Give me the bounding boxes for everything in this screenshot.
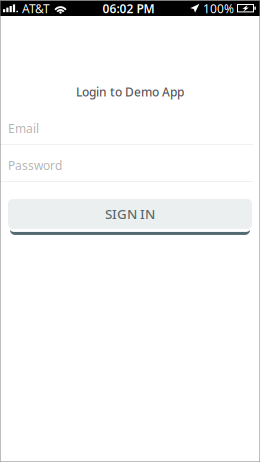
staticText: Login to Demo App xyxy=(76,84,184,100)
staticText: 100% xyxy=(203,0,234,16)
staticText: Email xyxy=(8,120,39,136)
staticText: AT&T xyxy=(22,0,50,16)
staticText: 06:02 PM xyxy=(102,0,154,16)
staticText: SIGN IN xyxy=(105,205,155,223)
staticText: Password xyxy=(8,157,62,173)
button[interactable]: SIGN IN xyxy=(8,199,252,235)
button[interactable]: Email xyxy=(0,108,260,145)
button[interactable]: Password xyxy=(0,145,260,182)
